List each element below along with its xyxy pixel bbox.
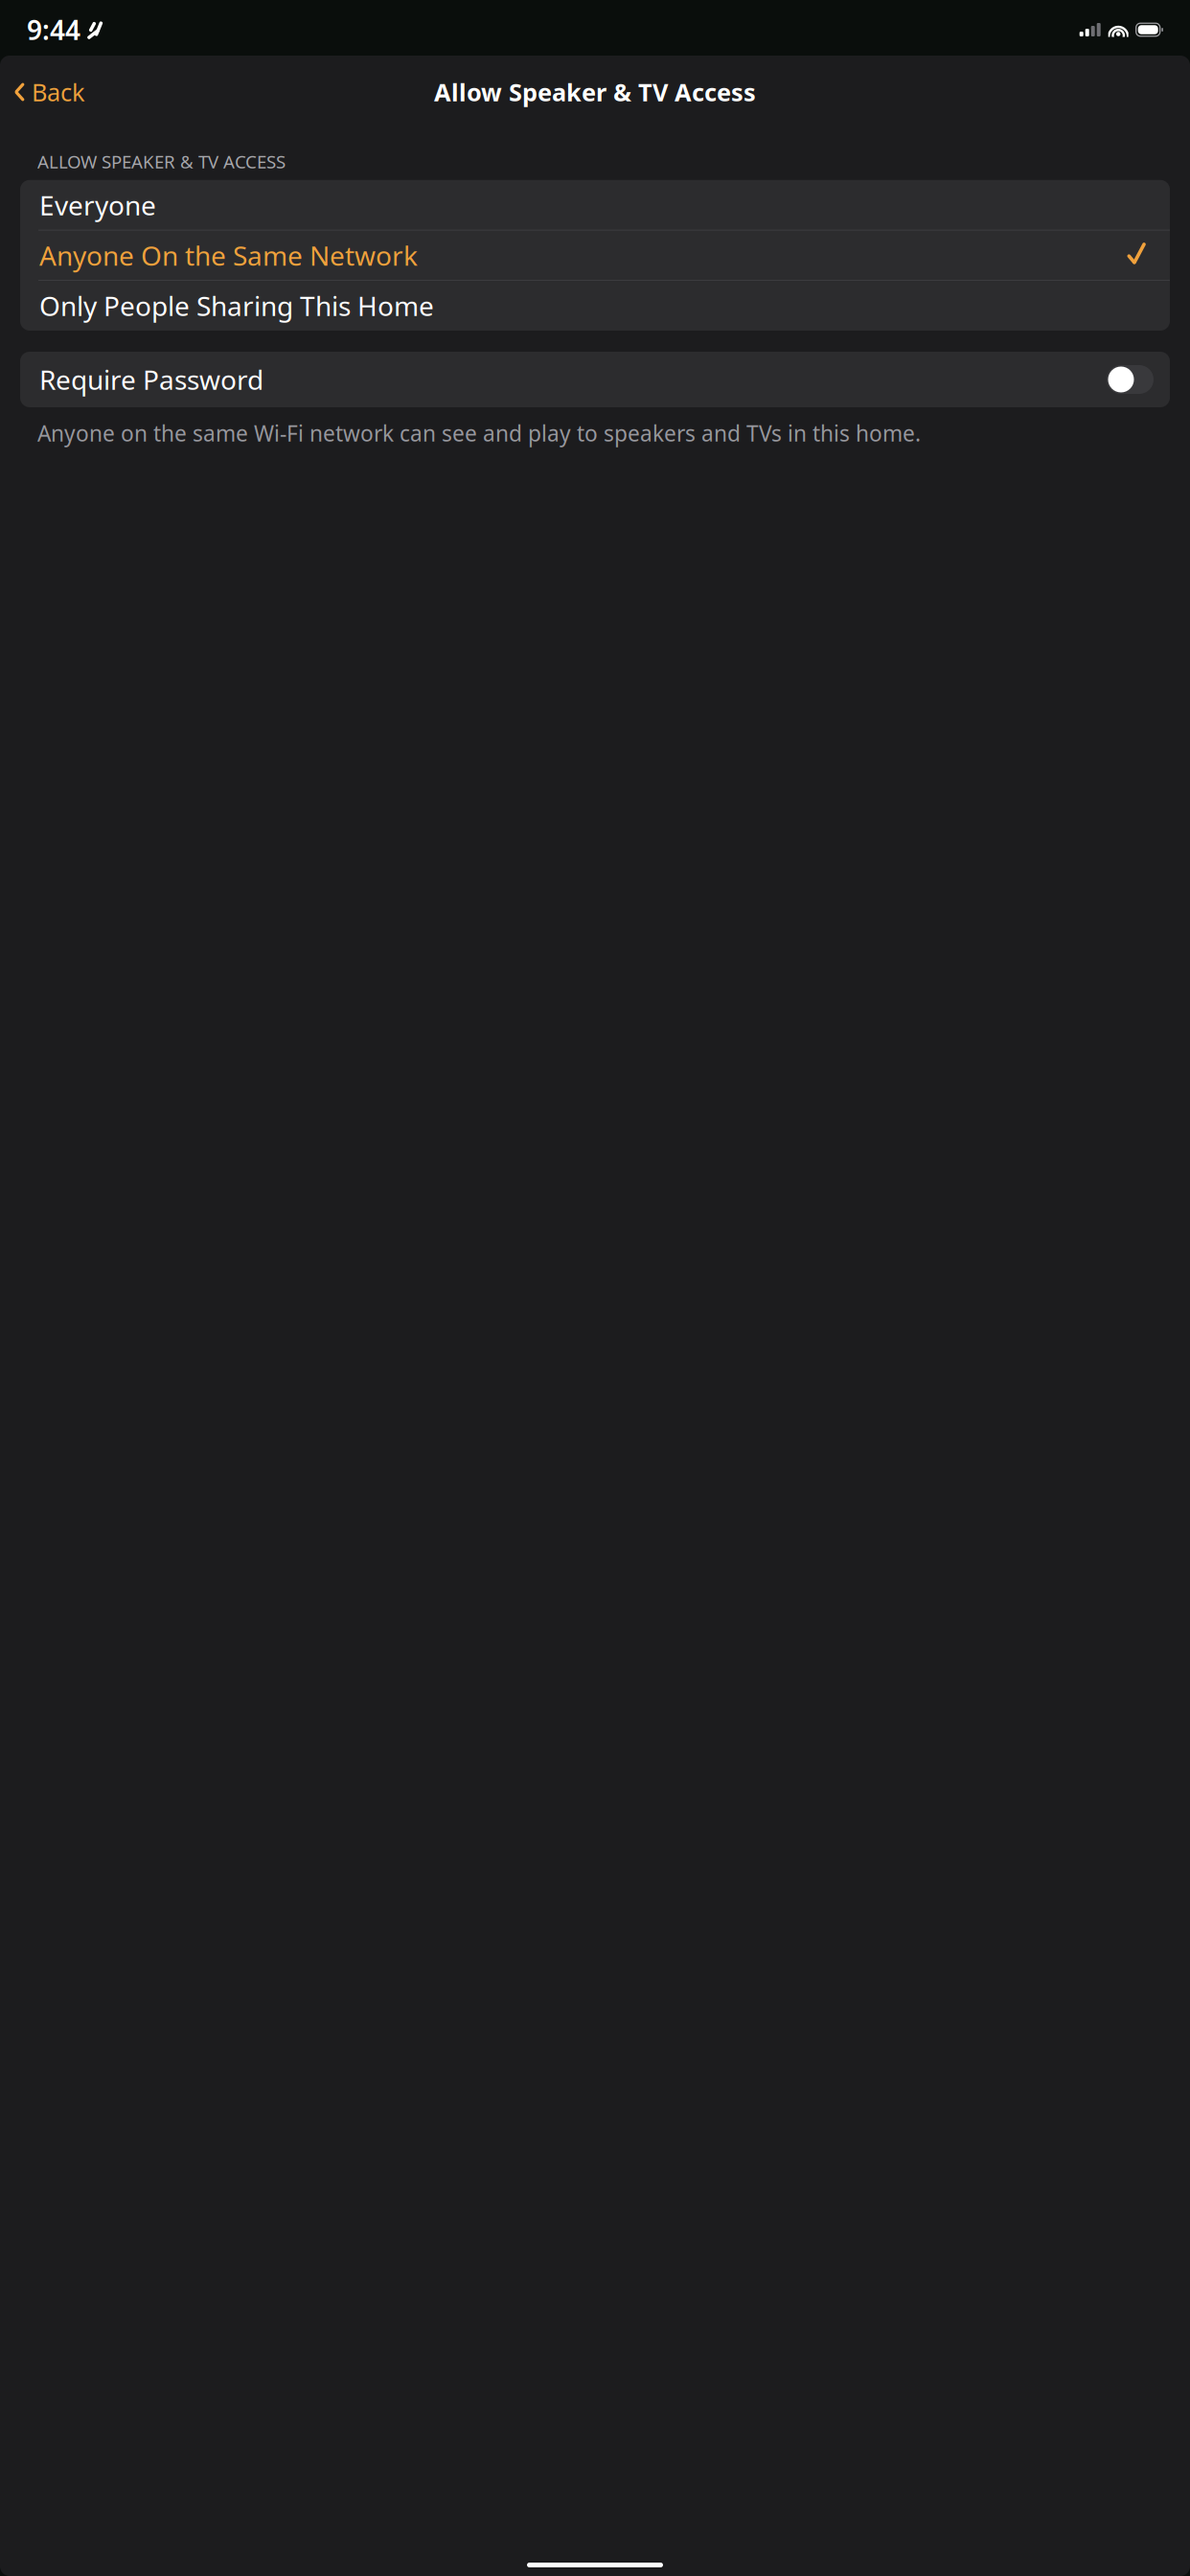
staticText: ALLOW SPEAKER & TV ACCESS bbox=[37, 149, 286, 173]
staticText: Only People Sharing This Home bbox=[39, 288, 434, 324]
button[interactable]: Back bbox=[4, 68, 95, 116]
staticText: Back bbox=[32, 76, 85, 108]
staticText: Require Password bbox=[39, 362, 263, 397]
staticText: Allow Speaker & TV Access bbox=[434, 76, 756, 108]
staticText: Anyone on the same Wi-Fi network can see… bbox=[37, 419, 921, 448]
staticText: 9:44 bbox=[27, 12, 80, 48]
button[interactable]: Everyone bbox=[20, 180, 1170, 230]
button[interactable]: Require Password bbox=[20, 352, 1170, 407]
button[interactable]: Anyone On the Same Network bbox=[20, 230, 1170, 280]
staticText: Everyone bbox=[39, 187, 156, 223]
staticText: Anyone On the Same Network bbox=[39, 237, 418, 273]
button[interactable]: Only People Sharing This Home bbox=[20, 281, 1170, 331]
